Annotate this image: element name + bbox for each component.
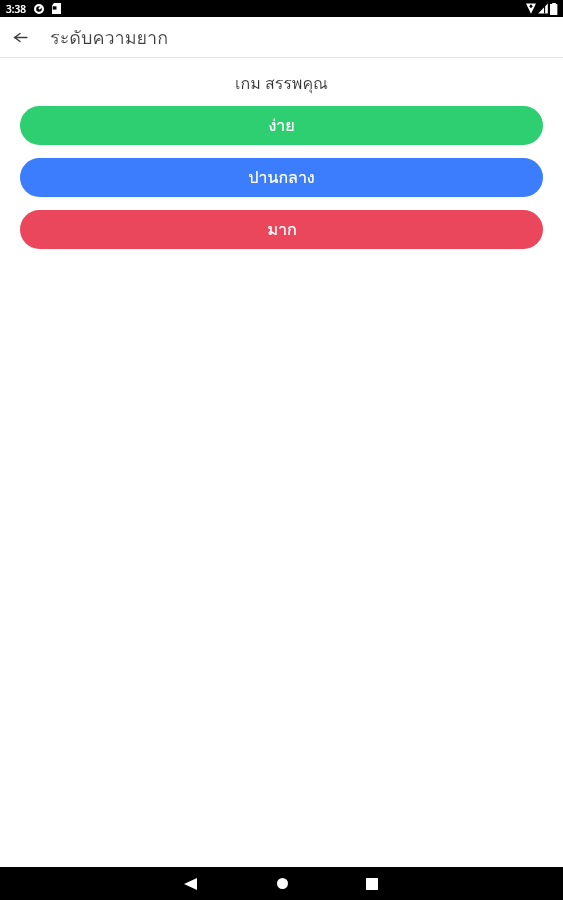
button[interactable]: มาก (20, 210, 543, 249)
staticText: เกม สรรพคุณ (235, 71, 328, 96)
staticText: 3:38 (6, 2, 26, 16)
button[interactable]: Home (259, 867, 305, 900)
button[interactable]: ง่าย (20, 106, 543, 145)
staticText: ระดับความยาก (50, 23, 169, 52)
staticText: มาก (267, 217, 297, 242)
button[interactable]: Recent apps (349, 867, 395, 900)
button[interactable]: Back (7, 24, 34, 51)
staticText: ปานกลาง (248, 165, 315, 190)
button[interactable]: Back (167, 867, 213, 900)
button[interactable]: ปานกลาง (20, 158, 543, 197)
staticText: ง่าย (268, 113, 295, 138)
